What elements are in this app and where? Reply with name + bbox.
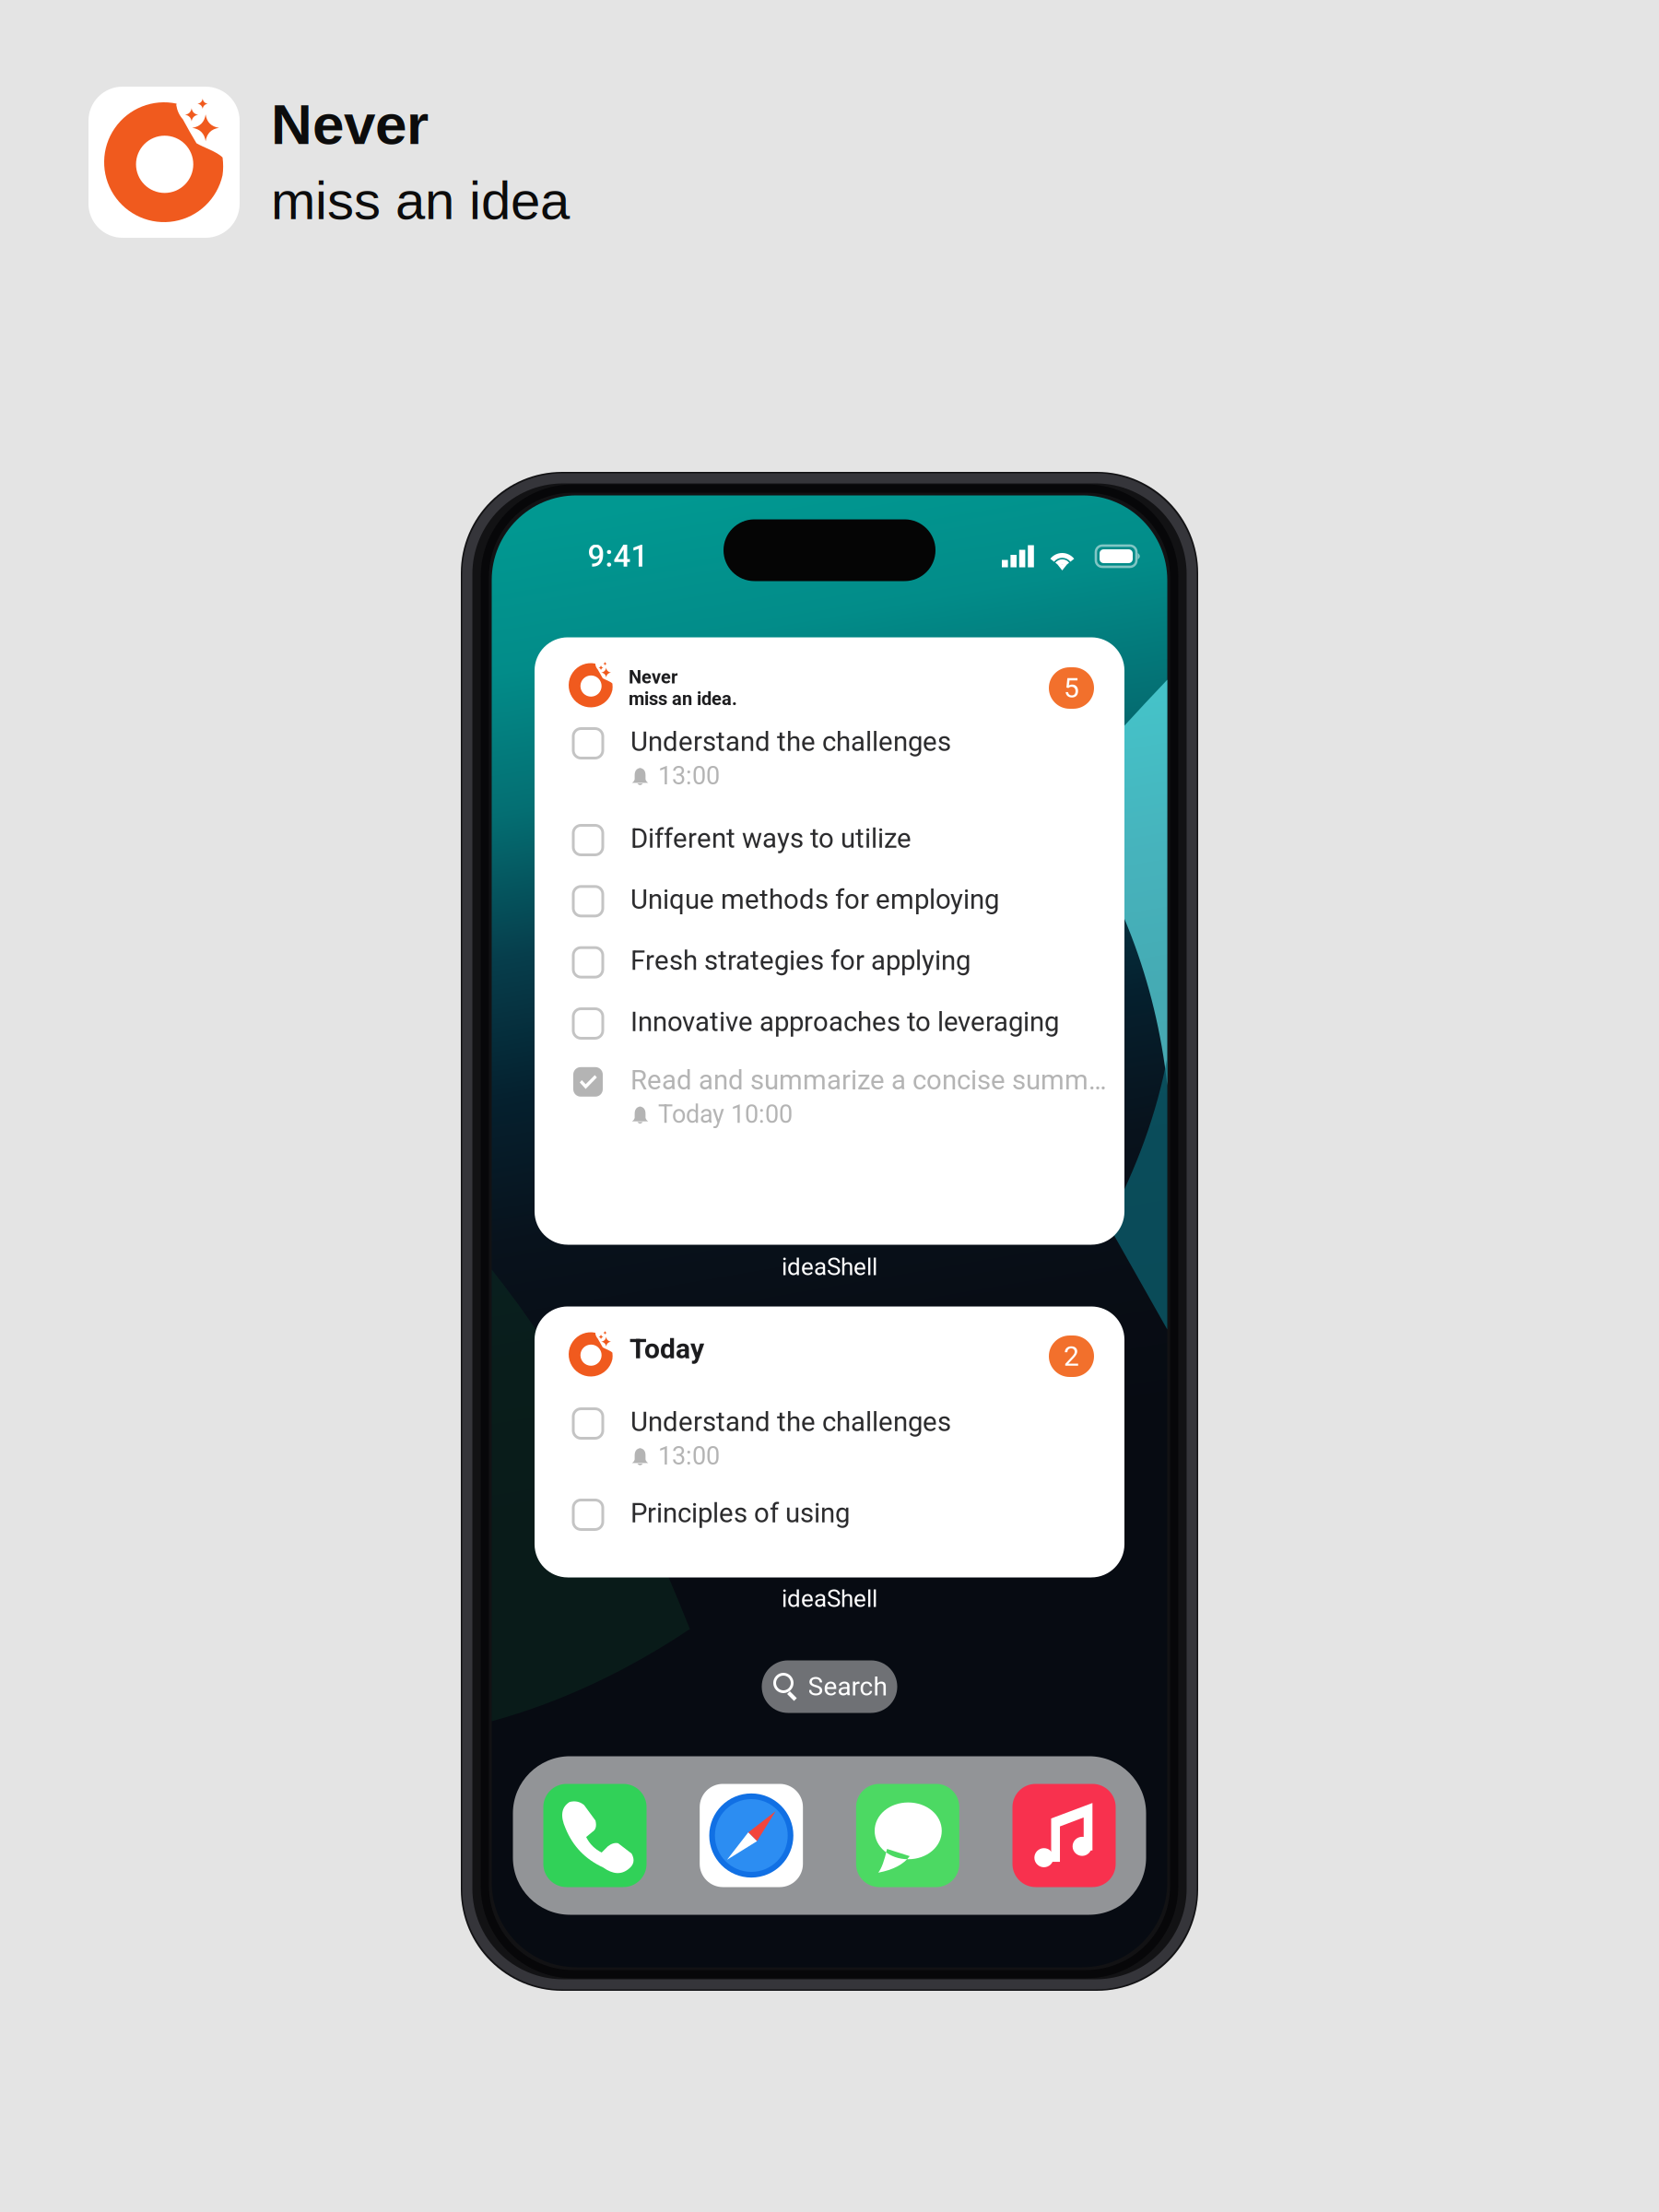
button[interactable]: Messages (856, 1784, 959, 1887)
button[interactable]: Music (1012, 1784, 1116, 1887)
staticText: Understand the challenges (630, 726, 951, 757)
button[interactable]: Search (762, 1660, 897, 1713)
staticText: Different ways to utilize (630, 823, 912, 854)
button[interactable]: Different ways to utilize (573, 823, 1094, 854)
button[interactable]: Unique methods for employing (573, 884, 1094, 915)
button[interactable]: Principles of using (573, 1497, 1094, 1529)
button[interactable]: Understand the challenges (573, 1406, 1094, 1471)
staticText: ideaShell (782, 1585, 877, 1613)
button[interactable]: Understand the challenges (573, 726, 1094, 790)
staticText: 2 (1064, 1340, 1079, 1372)
staticText: 9:41 (588, 538, 648, 574)
staticText: Never (271, 92, 429, 156)
button[interactable]: Fresh strategies for applying (573, 945, 1094, 976)
staticText: Search (808, 1672, 887, 1702)
staticText: Read and summarize a concise summ… (630, 1064, 1107, 1096)
button[interactable]: Safari (700, 1784, 803, 1887)
staticText: 13:00 (658, 761, 720, 790)
staticText: Understand the challenges (630, 1406, 951, 1438)
staticText: ideaShell (782, 1253, 877, 1281)
button[interactable]: Read and summarize a concise summ… (573, 1064, 1094, 1129)
staticText: miss an idea (271, 171, 570, 231)
staticText: Today (629, 1333, 704, 1365)
button[interactable]: Phone (543, 1784, 647, 1887)
staticText: Fresh strategies for applying (630, 945, 971, 976)
staticText: Never miss an idea. (629, 666, 737, 710)
staticText: 13:00 (658, 1441, 720, 1470)
staticText: 5 (1064, 672, 1079, 704)
staticText: Innovative approaches to leveraging (630, 1006, 1059, 1038)
staticText: Unique methods for employing (630, 884, 999, 915)
button[interactable]: Innovative approaches to leveraging (573, 1006, 1094, 1038)
staticText: Principles of using (630, 1497, 850, 1529)
staticText: Today 10:00 (658, 1100, 793, 1129)
